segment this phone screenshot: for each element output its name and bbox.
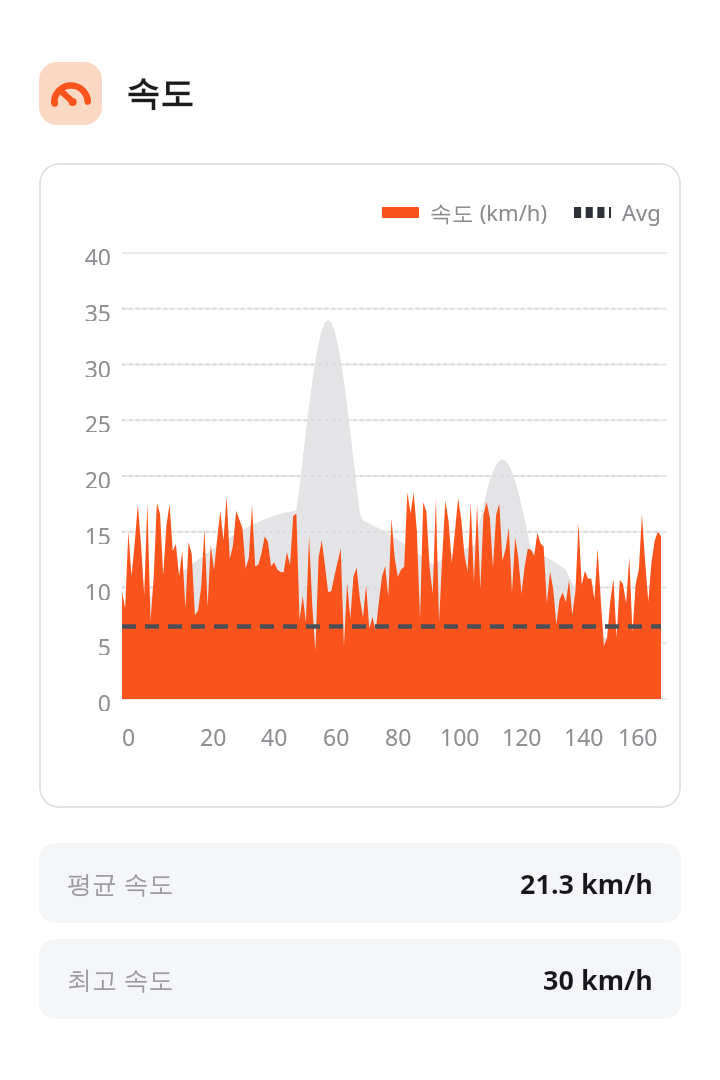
staticText: Avg (622, 197, 661, 227)
staticText: 속도 (126, 72, 194, 115)
staticText: 30 (84, 353, 111, 377)
staticText: 80 (385, 721, 412, 752)
staticText: 15 (84, 520, 111, 544)
staticText: 21.3 km/h (520, 865, 653, 902)
staticText: 30 km/h (543, 961, 653, 998)
button[interactable]: Avg (574, 197, 661, 227)
button[interactable]: 속도 (km/h) (39, 163, 681, 808)
button[interactable]: 최고 속도 (39, 939, 681, 1019)
staticText: 20 (84, 464, 111, 488)
button[interactable]: 속도 (km/h) (382, 197, 548, 227)
staticText: 40 (261, 721, 288, 752)
staticText: 20 (200, 721, 227, 752)
staticText: 140 (564, 721, 604, 752)
staticText: 40 (84, 241, 111, 265)
button[interactable]: Speed (39, 62, 102, 125)
button[interactable]: 평균 속도 (39, 843, 681, 923)
staticText: 60 (323, 721, 350, 752)
staticText: 10 (84, 576, 111, 600)
staticText: 0 (122, 721, 136, 752)
staticText: 25 (84, 408, 111, 432)
staticText: 속도 (km/h) (430, 197, 548, 227)
staticText: 35 (84, 297, 111, 321)
staticText: 100 (440, 721, 480, 752)
staticText: 160 (618, 721, 658, 752)
staticText: 평균 속도 (67, 866, 174, 900)
staticText: 120 (502, 721, 542, 752)
staticText: 최고 속도 (67, 962, 174, 996)
staticText: 5 (97, 631, 111, 655)
staticText: 0 (97, 687, 111, 711)
